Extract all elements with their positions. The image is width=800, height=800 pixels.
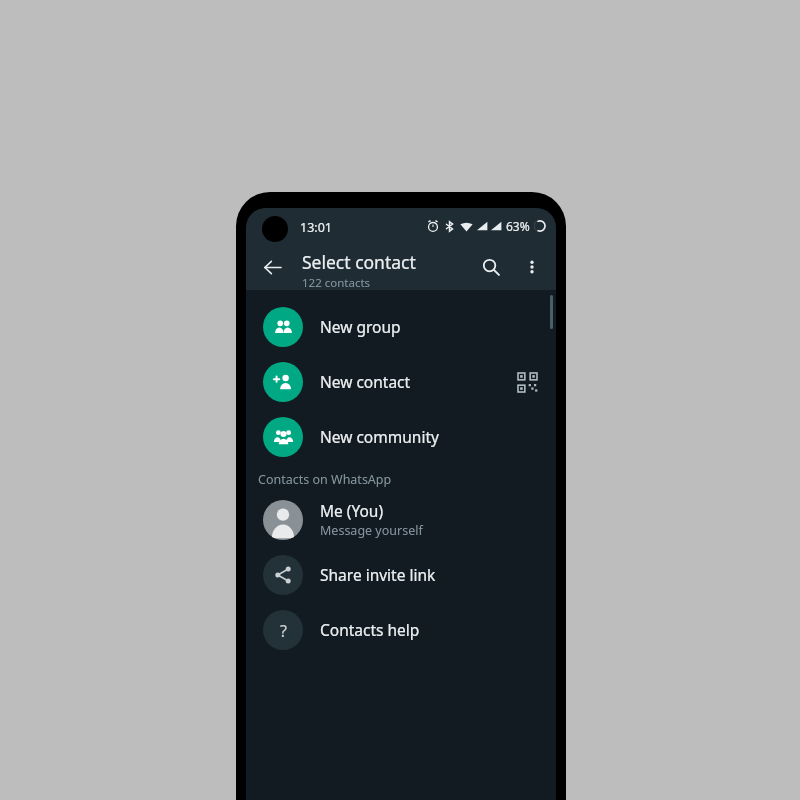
staticText: New community	[320, 426, 439, 447]
staticText: Contacts help	[320, 619, 420, 640]
staticText: ?	[280, 620, 287, 640]
button[interactable]: Back	[251, 246, 293, 288]
staticText: Contacts on WhatsApp	[258, 471, 392, 488]
staticText: 63%	[506, 218, 530, 234]
staticText: Select contact	[302, 250, 416, 274]
staticText: Message yourself	[320, 522, 423, 539]
staticText: New group	[320, 316, 401, 337]
button[interactable]: New contact	[246, 354, 556, 409]
button[interactable]: New group	[246, 299, 556, 354]
button[interactable]: Me (You)	[246, 492, 556, 547]
staticText: 13:01	[300, 219, 332, 236]
staticText: Share invite link	[320, 564, 436, 585]
staticText: New contact	[320, 371, 411, 392]
button[interactable]: New community	[246, 409, 556, 464]
button[interactable]: Share invite link	[246, 547, 556, 602]
button[interactable]: Search	[470, 246, 512, 288]
staticText: 122 contacts	[302, 275, 371, 291]
button[interactable]: Scan QR code	[510, 365, 544, 399]
button[interactable]: ?	[246, 602, 556, 657]
button[interactable]: More options	[512, 247, 552, 287]
staticText: Me (You)	[320, 500, 384, 521]
